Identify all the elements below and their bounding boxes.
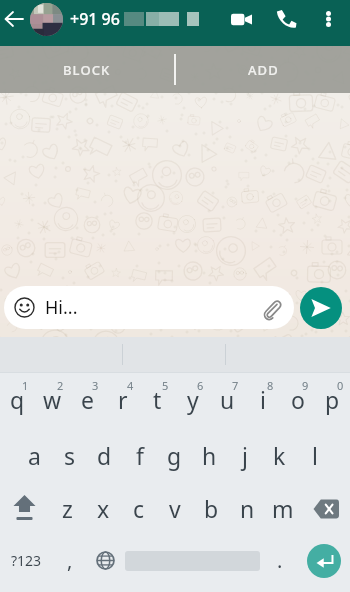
staticText: 6: [197, 378, 204, 393]
staticText: i: [260, 384, 266, 415]
button[interactable]: Shift: [0, 482, 49, 535]
button[interactable]: Space: [122, 532, 262, 589]
staticText: n: [240, 493, 255, 524]
staticText: m: [272, 493, 294, 524]
staticText: 0: [337, 378, 344, 393]
staticText: w: [43, 384, 62, 415]
button[interactable]: ,: [52, 532, 88, 589]
button[interactable]: j: [227, 429, 262, 482]
staticText: k: [273, 440, 286, 471]
button[interactable]: Video call: [219, 0, 263, 38]
button[interactable]: 4: [105, 374, 140, 429]
button[interactable]: ?123: [0, 532, 52, 589]
staticText: ,: [67, 547, 73, 574]
button[interactable]: BLOCK: [0, 46, 174, 93]
staticText: y: [187, 384, 199, 415]
button[interactable]: a: [17, 429, 52, 482]
button[interactable]: Hi...: [4, 286, 294, 329]
button[interactable]: Backspace: [301, 482, 350, 535]
button[interactable]: n: [229, 482, 265, 535]
button[interactable]: 5: [140, 374, 175, 429]
staticText: 5: [162, 378, 169, 393]
staticText: t: [153, 384, 162, 415]
staticText: +91 96: [70, 8, 120, 30]
button[interactable]: Attach: [258, 295, 284, 321]
staticText: z: [62, 493, 73, 524]
staticText: 4: [127, 378, 134, 393]
button[interactable]: Language: [88, 532, 122, 589]
staticText: r: [118, 384, 128, 415]
button[interactable]: 8: [245, 374, 280, 429]
button[interactable]: x: [85, 482, 121, 535]
staticText: Hi...: [45, 295, 78, 320]
button[interactable]: g: [157, 429, 192, 482]
button[interactable]: 9: [280, 374, 315, 429]
staticText: ADD: [248, 61, 279, 79]
button[interactable]: Send: [300, 287, 342, 329]
button[interactable]: Enter: [298, 532, 350, 589]
button[interactable]: z: [49, 482, 85, 535]
button[interactable]: m: [265, 482, 301, 535]
staticText: .: [277, 547, 283, 574]
staticText: x: [97, 493, 110, 524]
staticText: o: [291, 384, 305, 415]
button[interactable]: 0: [315, 374, 350, 429]
staticText: ?123: [11, 551, 42, 570]
button[interactable]: 7: [210, 374, 245, 429]
staticText: u: [220, 384, 235, 415]
staticText: s: [64, 440, 76, 471]
button[interactable]: More options: [308, 0, 348, 38]
staticText: e: [81, 384, 94, 415]
staticText: BLOCK: [63, 61, 111, 79]
staticText: 7: [232, 378, 239, 393]
staticText: q: [10, 384, 25, 415]
button[interactable]: l: [297, 429, 332, 482]
button[interactable]: v: [157, 482, 193, 535]
staticText: a: [28, 440, 41, 471]
button[interactable]: Back: [0, 5, 28, 33]
staticText: 2: [57, 378, 64, 393]
staticText: c: [133, 493, 145, 524]
button[interactable]: 1: [0, 374, 35, 429]
staticText: h: [202, 440, 217, 471]
button[interactable]: c: [121, 482, 157, 535]
staticText: l: [312, 440, 318, 471]
button[interactable]: Call: [263, 0, 308, 38]
button[interactable]: 6: [175, 374, 210, 429]
staticText: p: [325, 384, 340, 415]
staticText: b: [204, 493, 219, 524]
button[interactable]: s: [52, 429, 87, 482]
staticText: v: [169, 493, 181, 524]
button[interactable]: d: [87, 429, 122, 482]
button[interactable]: 2: [35, 374, 70, 429]
staticText: 9: [302, 378, 309, 393]
button[interactable]: 3: [70, 374, 105, 429]
staticText: 8: [267, 378, 274, 393]
staticText: g: [167, 440, 182, 471]
staticText: 3: [92, 378, 99, 393]
button[interactable]: .: [262, 532, 298, 589]
button[interactable]: h: [192, 429, 227, 482]
button[interactable]: b: [193, 482, 229, 535]
staticText: d: [97, 440, 112, 471]
button[interactable]: f: [122, 429, 157, 482]
staticText: f: [136, 440, 144, 471]
button[interactable]: ADD: [176, 46, 350, 93]
button[interactable]: k: [262, 429, 297, 482]
staticText: j: [242, 440, 248, 471]
staticText: 1: [22, 378, 29, 393]
